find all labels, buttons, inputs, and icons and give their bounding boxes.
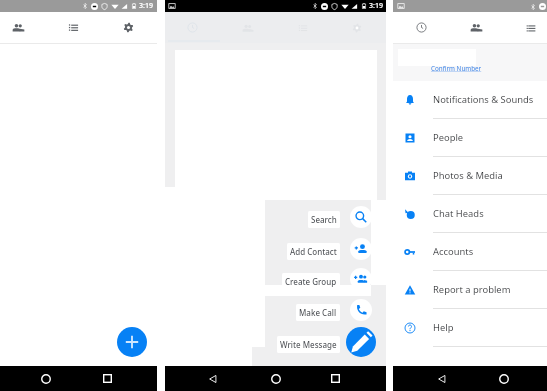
staticText: Accounts [433, 245, 474, 258]
button[interactable]: People [460, 12, 492, 43]
staticText: Write Message [280, 339, 337, 350]
button[interactable]: Recents [95, 366, 120, 391]
button[interactable]: Back [429, 366, 454, 391]
button[interactable]: Back [200, 366, 225, 391]
button[interactable]: Add Contact [287, 243, 340, 260]
button[interactable]: Make Call [296, 304, 340, 321]
button[interactable]: Search [308, 211, 340, 228]
staticText: Create Group [285, 276, 337, 287]
staticText: 3:19 [369, 1, 383, 11]
button[interactable]: Help [393, 309, 547, 347]
button[interactable]: Chat Heads [393, 195, 547, 233]
button[interactable]: Home [263, 366, 288, 391]
button[interactable]: Recents [323, 366, 348, 391]
button[interactable]: New conversation [117, 327, 147, 357]
button[interactable]: Report a problem [393, 271, 547, 309]
button[interactable]: Settings [112, 12, 144, 43]
button[interactable]: Chats [515, 12, 547, 43]
button[interactable]: Accounts [393, 233, 547, 271]
staticText: Confirm Number [431, 64, 482, 73]
button[interactable]: Home [491, 366, 516, 391]
button[interactable]: Search [350, 206, 372, 228]
button[interactable]: Home [33, 366, 58, 391]
button[interactable]: Notifications & Sounds [393, 81, 547, 119]
button[interactable]: Confirm Number [431, 64, 482, 73]
staticText: Photos & Media [433, 169, 503, 182]
staticText: Add Contact [290, 246, 337, 257]
button[interactable]: Recent [405, 12, 437, 43]
button[interactable]: Create Group [282, 273, 340, 290]
button[interactable]: Chats [57, 12, 89, 43]
button[interactable]: Add Contact [350, 238, 372, 260]
button[interactable]: Make Call [350, 299, 372, 321]
staticText: People [433, 131, 464, 144]
button[interactable]: People [393, 119, 547, 157]
button[interactable]: People [2, 12, 34, 43]
button[interactable]: Write Message [346, 327, 376, 357]
staticText: Make Call [299, 307, 337, 318]
button[interactable]: Write Message [277, 336, 340, 353]
staticText: Chat Heads [433, 207, 484, 220]
button[interactable]: Create Group [350, 268, 372, 290]
staticText: 3:19 [139, 1, 153, 11]
staticText: Help [433, 321, 454, 334]
button[interactable]: Photos & Media [393, 157, 547, 195]
staticText: Report a problem [433, 283, 511, 296]
staticText: Search [311, 214, 337, 225]
staticText: Notifications & Sounds [433, 93, 534, 106]
